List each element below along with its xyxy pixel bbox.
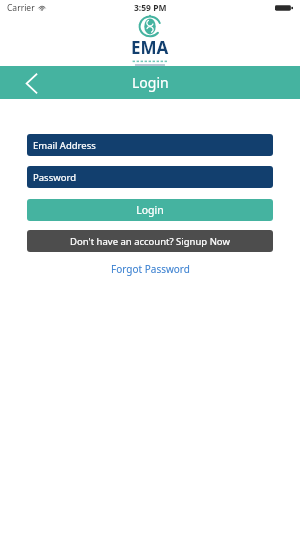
staticText: Carrier xyxy=(7,2,35,14)
staticText: Forgot Password xyxy=(111,262,190,276)
button[interactable]: Email Address xyxy=(27,134,273,156)
staticText: Password xyxy=(33,171,76,184)
button[interactable]: Forgot Password xyxy=(27,262,273,276)
button[interactable]: Password xyxy=(27,166,273,188)
staticText: Don't have an account? Signup Now xyxy=(70,235,230,248)
staticText: Login xyxy=(132,73,169,92)
staticText: 3:59 PM xyxy=(134,2,167,14)
button[interactable]: Don't have an account? Signup Now xyxy=(27,230,273,252)
staticText: Login xyxy=(136,203,164,217)
button[interactable]: Back xyxy=(18,70,44,96)
button[interactable]: Login xyxy=(27,199,273,221)
staticText: Email Address xyxy=(33,139,96,152)
staticText: EMA xyxy=(131,36,169,59)
